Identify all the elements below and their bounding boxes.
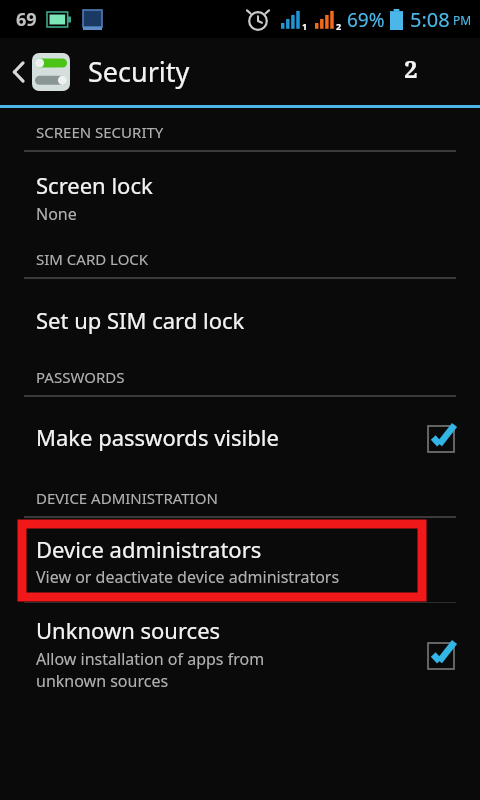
staticText: SIM CARD LOCK <box>36 249 149 269</box>
staticText: 1 <box>302 20 308 32</box>
button[interactable]: Make passwords visible <box>0 397 480 476</box>
button[interactable]: Unknown sources <box>0 603 480 702</box>
staticText: View or deactivate device administrators <box>36 566 340 588</box>
button[interactable]: Set up SIM card lock <box>0 279 480 359</box>
staticText: 69% <box>347 7 385 33</box>
staticText: Allow installation of apps from unknown … <box>36 648 265 692</box>
staticText: Screen lock <box>36 170 153 200</box>
staticText: Unknown sources <box>36 615 221 645</box>
staticText: Make passwords visible <box>36 422 279 452</box>
staticText: None <box>36 203 77 225</box>
button[interactable]: Device administrators <box>22 524 422 597</box>
staticText: 2 <box>336 20 342 32</box>
button[interactable]: Back <box>0 47 78 97</box>
button[interactable]: Screen lock <box>0 152 480 235</box>
staticText: DEVICE ADMINISTRATION <box>36 488 218 508</box>
staticText: PM <box>453 12 472 28</box>
staticText: SCREEN SECURITY <box>36 122 164 142</box>
staticText: Security <box>88 53 190 90</box>
staticText: PASSWORDS <box>36 367 125 387</box>
staticText: 5:08 <box>410 6 450 33</box>
staticText: 69 <box>16 7 37 32</box>
staticText: 2 <box>404 52 418 85</box>
staticText: Device administrators <box>36 534 262 564</box>
staticText: Set up SIM card lock <box>36 305 245 335</box>
